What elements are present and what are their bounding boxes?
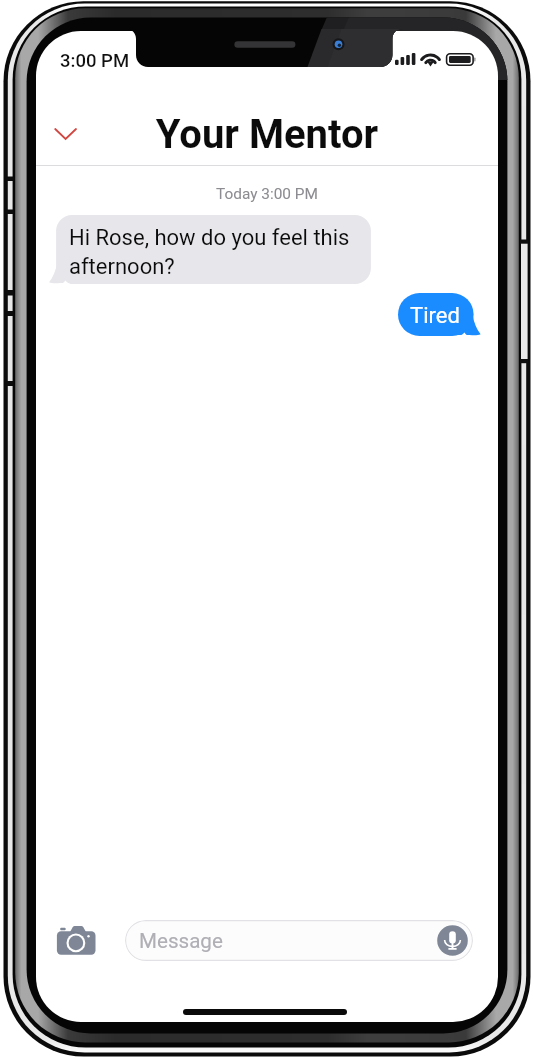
button[interactable]: Voice message: [437, 925, 468, 956]
staticText: Your Mentor: [36, 111, 498, 158]
staticText: Hi Rose, how do you feel this afternoon?: [69, 225, 350, 279]
staticText: Tired: [410, 303, 460, 329]
button[interactable]: Hi Rose, how do you feel this afternoon?: [47, 215, 373, 287]
staticText: Message: [139, 929, 223, 953]
staticText: Today 3:00 PM: [36, 185, 498, 203]
staticText: 3:00 PM: [60, 50, 130, 72]
button[interactable]: Collapse: [49, 120, 79, 150]
button[interactable]: Your Mentor: [36, 100, 498, 160]
button[interactable]: Message: [125, 920, 473, 961]
button[interactable]: Tired: [398, 293, 482, 337]
button[interactable]: Camera: [52, 922, 100, 960]
